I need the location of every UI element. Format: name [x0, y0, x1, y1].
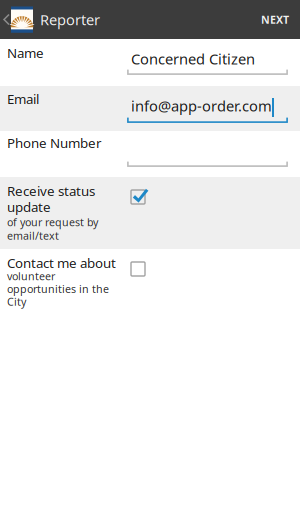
- staticText: NEXT: [261, 12, 289, 27]
- staticText: update: [7, 198, 51, 216]
- button[interactable]: info@app-order.com: [127, 92, 288, 123]
- staticText: opportunities in the: [7, 282, 109, 296]
- staticText: Contact me about: [7, 254, 116, 272]
- staticText: Reporter: [40, 10, 100, 29]
- button[interactable]: NEXT: [250, 0, 300, 39]
- staticText: of your request by: [7, 215, 98, 229]
- staticText: Name: [7, 44, 44, 62]
- button[interactable]: [127, 139, 288, 167]
- button[interactable]: Back: [0, 0, 33, 39]
- staticText: Phone Number: [7, 134, 102, 152]
- staticText: Concerned Citizen: [131, 49, 255, 68]
- staticText: volunteer: [7, 269, 55, 283]
- button[interactable]: Concerned Citizen: [127, 45, 288, 75]
- staticText: Receive status: [7, 182, 95, 200]
- staticText: Email: [7, 90, 39, 108]
- button[interactable]: Receive status: [0, 177, 300, 249]
- staticText: info@app-order.com: [131, 96, 272, 115]
- staticText: email/text: [7, 228, 59, 243]
- staticText: City: [7, 295, 26, 309]
- button[interactable]: Contact me about: [0, 249, 300, 325]
